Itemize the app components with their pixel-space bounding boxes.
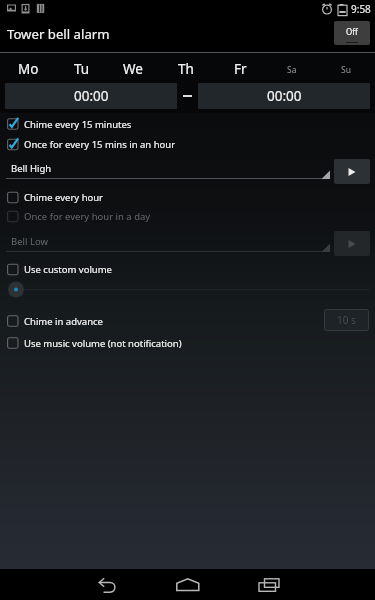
button[interactable]: Use music volume (not notification) xyxy=(0,332,375,354)
staticText: Use music volume (not notification) xyxy=(24,337,182,350)
button[interactable]: Use custom volume xyxy=(0,261,375,278)
button[interactable]: Home xyxy=(168,569,208,600)
staticText: 00:00 xyxy=(267,87,302,105)
button[interactable]: Th xyxy=(159,53,213,79)
staticText: Once for every 15 mins in an hour xyxy=(24,138,176,151)
staticText: Bell High xyxy=(11,162,52,175)
button[interactable] xyxy=(0,278,375,310)
button[interactable]: Bell High xyxy=(6,155,330,188)
button[interactable]: Off xyxy=(334,21,370,45)
staticText: Sa xyxy=(287,64,297,76)
button[interactable]: Chime every 15 minutes xyxy=(0,114,375,134)
staticText: Mo xyxy=(18,60,39,78)
button[interactable]: Back xyxy=(88,569,128,600)
button[interactable]: Bell Low xyxy=(6,226,330,261)
button[interactable]: We xyxy=(106,53,159,79)
button[interactable]: 10 s xyxy=(324,309,369,331)
staticText: Off xyxy=(346,26,358,37)
staticText: We xyxy=(123,60,143,78)
button[interactable]: Chime in advance xyxy=(0,310,375,332)
button[interactable]: Chime every hour xyxy=(0,188,375,207)
button[interactable]: Play xyxy=(334,159,370,184)
staticText: Tower bell alarm xyxy=(7,25,110,43)
button[interactable]: Once for every 15 mins in an hour xyxy=(0,134,375,155)
staticText: Use custom volume xyxy=(24,263,112,276)
staticText: 9:58 xyxy=(351,2,371,16)
button[interactable]: Play xyxy=(334,231,370,256)
button[interactable]: 00:00 xyxy=(5,83,177,109)
staticText: Once for every hour in a day xyxy=(24,210,151,223)
staticText: Th xyxy=(178,60,194,78)
staticText: Chime every 15 minutes xyxy=(24,118,132,131)
button[interactable]: Mo xyxy=(0,53,53,79)
staticText: Chime in advance xyxy=(24,315,103,328)
staticText: Tu xyxy=(74,60,90,78)
staticText: 00:00 xyxy=(74,87,109,105)
staticText: 10 s xyxy=(337,313,356,327)
staticText: Fr xyxy=(234,60,247,78)
button[interactable]: Fr xyxy=(213,53,267,79)
button[interactable]: Sa xyxy=(267,53,321,79)
button[interactable]: Once for every hour in a day xyxy=(0,207,375,226)
staticText: Bell Low xyxy=(11,235,48,248)
button[interactable]: Recents xyxy=(249,569,289,600)
button[interactable]: Tu xyxy=(53,53,106,79)
staticText: Chime every hour xyxy=(24,191,104,204)
button[interactable]: Su xyxy=(321,53,375,79)
staticText: Su xyxy=(341,64,351,76)
button[interactable]: 00:00 xyxy=(198,83,370,109)
